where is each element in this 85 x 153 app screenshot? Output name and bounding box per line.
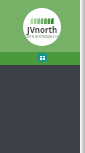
staticText: NORTH AFFORDABLE HOUSING	[23, 35, 61, 39]
staticText: JVnorth	[27, 24, 58, 35]
button[interactable]: View modules	[38, 53, 47, 62]
